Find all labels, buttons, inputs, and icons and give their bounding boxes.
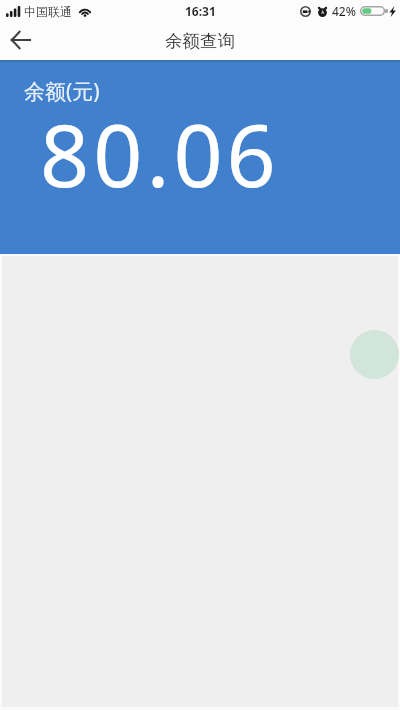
staticText: 42%: [332, 3, 356, 19]
button[interactable]: Back: [0, 22, 42, 60]
staticText: 中国联通: [24, 4, 72, 19]
staticText: 16:31: [185, 3, 216, 19]
staticText: 余额(元): [24, 77, 100, 106]
staticText: 余额查询: [165, 30, 235, 52]
staticText: 80.06: [40, 95, 280, 212]
